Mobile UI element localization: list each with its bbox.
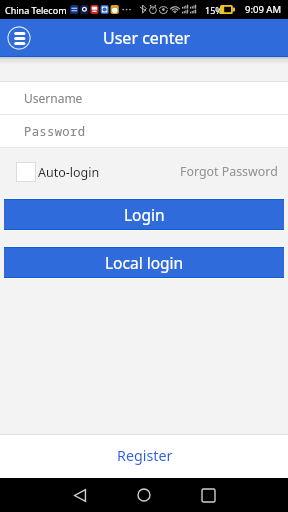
button[interactable]: Home [127,478,161,512]
button[interactable]: Local login [4,247,284,278]
button[interactable]: Menu [7,26,31,50]
staticText: Login [124,204,165,225]
staticText: Register [117,446,173,465]
staticText: Password [24,123,86,140]
staticText: Auto-login [38,164,100,181]
staticText: Local login [105,252,184,273]
button[interactable]: Auto-login [16,162,100,182]
staticText: User center [103,27,191,49]
staticText: 15% [205,4,223,16]
staticText: Username [24,90,83,106]
button[interactable]: Login [4,199,284,230]
button[interactable]: Recents [191,478,225,512]
button[interactable]: Password [24,115,288,147]
button[interactable]: Back [63,478,97,512]
button[interactable]: Register [0,435,288,478]
staticText: 9:09 AM [245,3,282,16]
button[interactable]: Forgot Password [180,163,288,180]
button[interactable]: Username [24,82,288,114]
staticText: China Telecom [5,4,67,16]
